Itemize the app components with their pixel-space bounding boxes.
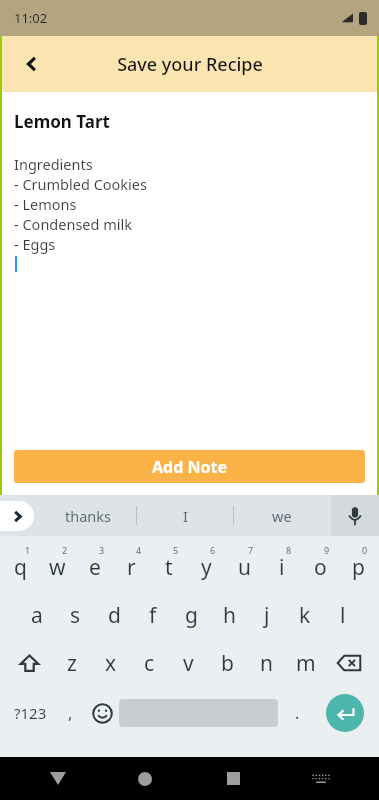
button[interactable]: Emoji xyxy=(85,692,119,734)
staticText: k xyxy=(299,601,311,630)
button[interactable]: a xyxy=(17,596,56,634)
staticText: - Eggs xyxy=(14,234,56,254)
staticText: g xyxy=(185,601,198,630)
button[interactable]: s xyxy=(56,596,95,634)
button[interactable]: h xyxy=(210,596,248,634)
button[interactable]: we xyxy=(234,495,330,536)
button[interactable]: 2 xyxy=(39,544,76,584)
button[interactable]: Switch keyboard xyxy=(277,757,365,800)
button[interactable]: Voice input xyxy=(331,495,379,536)
staticText: 11:02 xyxy=(14,9,48,27)
staticText: , xyxy=(68,702,73,724)
staticText: p xyxy=(352,553,365,582)
staticText: s xyxy=(70,601,81,630)
staticText: c xyxy=(144,649,155,678)
button[interactable]: Recents xyxy=(189,757,277,800)
button[interactable]: 9 xyxy=(301,544,339,584)
staticText: x xyxy=(105,649,117,678)
staticText: Save your Recipe xyxy=(117,52,263,77)
staticText: h xyxy=(223,601,236,630)
staticText: q xyxy=(14,553,27,582)
staticText: thanks xyxy=(65,506,111,526)
staticText: 3 xyxy=(99,544,105,556)
button[interactable]: b xyxy=(208,644,247,682)
staticText: u xyxy=(238,553,251,582)
button[interactable]: 3 xyxy=(76,544,113,584)
button[interactable]: m xyxy=(286,644,325,682)
button[interactable]: 6 xyxy=(187,544,225,584)
staticText: j xyxy=(264,601,270,630)
button[interactable]: 5 xyxy=(150,544,187,584)
button[interactable]: I xyxy=(137,495,233,536)
staticText: Add Note xyxy=(152,456,227,478)
button[interactable]: Enter xyxy=(316,692,373,734)
staticText: - Crumbled Cookies xyxy=(14,174,147,194)
staticText: b xyxy=(221,649,234,678)
staticText: - Condensed milk xyxy=(14,214,132,234)
staticText: l xyxy=(340,601,346,630)
staticText: I xyxy=(183,506,188,526)
button[interactable]: n xyxy=(247,644,286,682)
button[interactable]: . xyxy=(278,692,316,734)
button[interactable]: Ingredients xyxy=(14,154,365,272)
button[interactable]: 8 xyxy=(263,544,301,584)
staticText: . xyxy=(295,702,300,724)
button[interactable]: thanks xyxy=(40,495,136,536)
button[interactable]: f xyxy=(134,596,172,634)
staticText: e xyxy=(89,553,101,582)
button[interactable]: x xyxy=(91,644,130,682)
staticText: o xyxy=(314,553,327,582)
staticText: Lemon Tart xyxy=(14,110,110,133)
staticText: we xyxy=(272,506,292,526)
staticText: Ingredients xyxy=(14,154,93,174)
staticText: w xyxy=(49,553,66,582)
button[interactable]: Backspace xyxy=(325,644,373,682)
staticText: 4 xyxy=(136,544,142,556)
button[interactable]: Add Note xyxy=(14,450,365,483)
staticText: r xyxy=(127,553,136,582)
staticText: a xyxy=(31,601,43,630)
staticText: z xyxy=(67,649,77,678)
staticText: m xyxy=(296,649,316,678)
staticText: 5 xyxy=(173,544,179,556)
button[interactable]: Expand suggestions xyxy=(0,501,34,531)
button[interactable]: g xyxy=(172,596,210,634)
button[interactable]: Shift xyxy=(6,644,53,682)
button[interactable]: Back xyxy=(14,757,101,800)
button[interactable]: 7 xyxy=(225,544,263,584)
button[interactable]: , xyxy=(55,692,85,734)
staticText: i xyxy=(279,553,285,582)
staticText: 1 xyxy=(25,544,31,556)
staticText: 2 xyxy=(62,544,68,556)
button[interactable]: k xyxy=(286,596,324,634)
button[interactable]: Home xyxy=(101,757,189,800)
button[interactable]: v xyxy=(169,644,208,682)
staticText: 6 xyxy=(210,544,216,556)
staticText: y xyxy=(201,553,212,582)
button[interactable]: 0 xyxy=(339,544,377,584)
staticText: v xyxy=(183,649,194,678)
staticText: 7 xyxy=(248,544,254,556)
button[interactable]: j xyxy=(248,596,286,634)
staticText: 9 xyxy=(324,544,330,556)
button[interactable]: Back xyxy=(10,42,54,86)
staticText: f xyxy=(149,601,157,630)
button[interactable]: z xyxy=(53,644,91,682)
button[interactable]: Lemon Tart xyxy=(14,110,365,133)
button[interactable]: c xyxy=(130,644,169,682)
button[interactable]: d xyxy=(95,596,134,634)
staticText: n xyxy=(260,649,273,678)
staticText: 0 xyxy=(362,544,368,556)
button[interactable]: l xyxy=(324,596,362,634)
staticText: ?123 xyxy=(14,703,47,723)
button[interactable]: 1 xyxy=(2,544,39,584)
button[interactable]: 4 xyxy=(113,544,150,584)
staticText: - Lemons xyxy=(14,194,77,214)
staticText: d xyxy=(108,601,121,630)
button[interactable]: ?123 xyxy=(6,692,55,734)
staticText: t xyxy=(165,553,173,582)
staticText: 8 xyxy=(286,544,292,556)
